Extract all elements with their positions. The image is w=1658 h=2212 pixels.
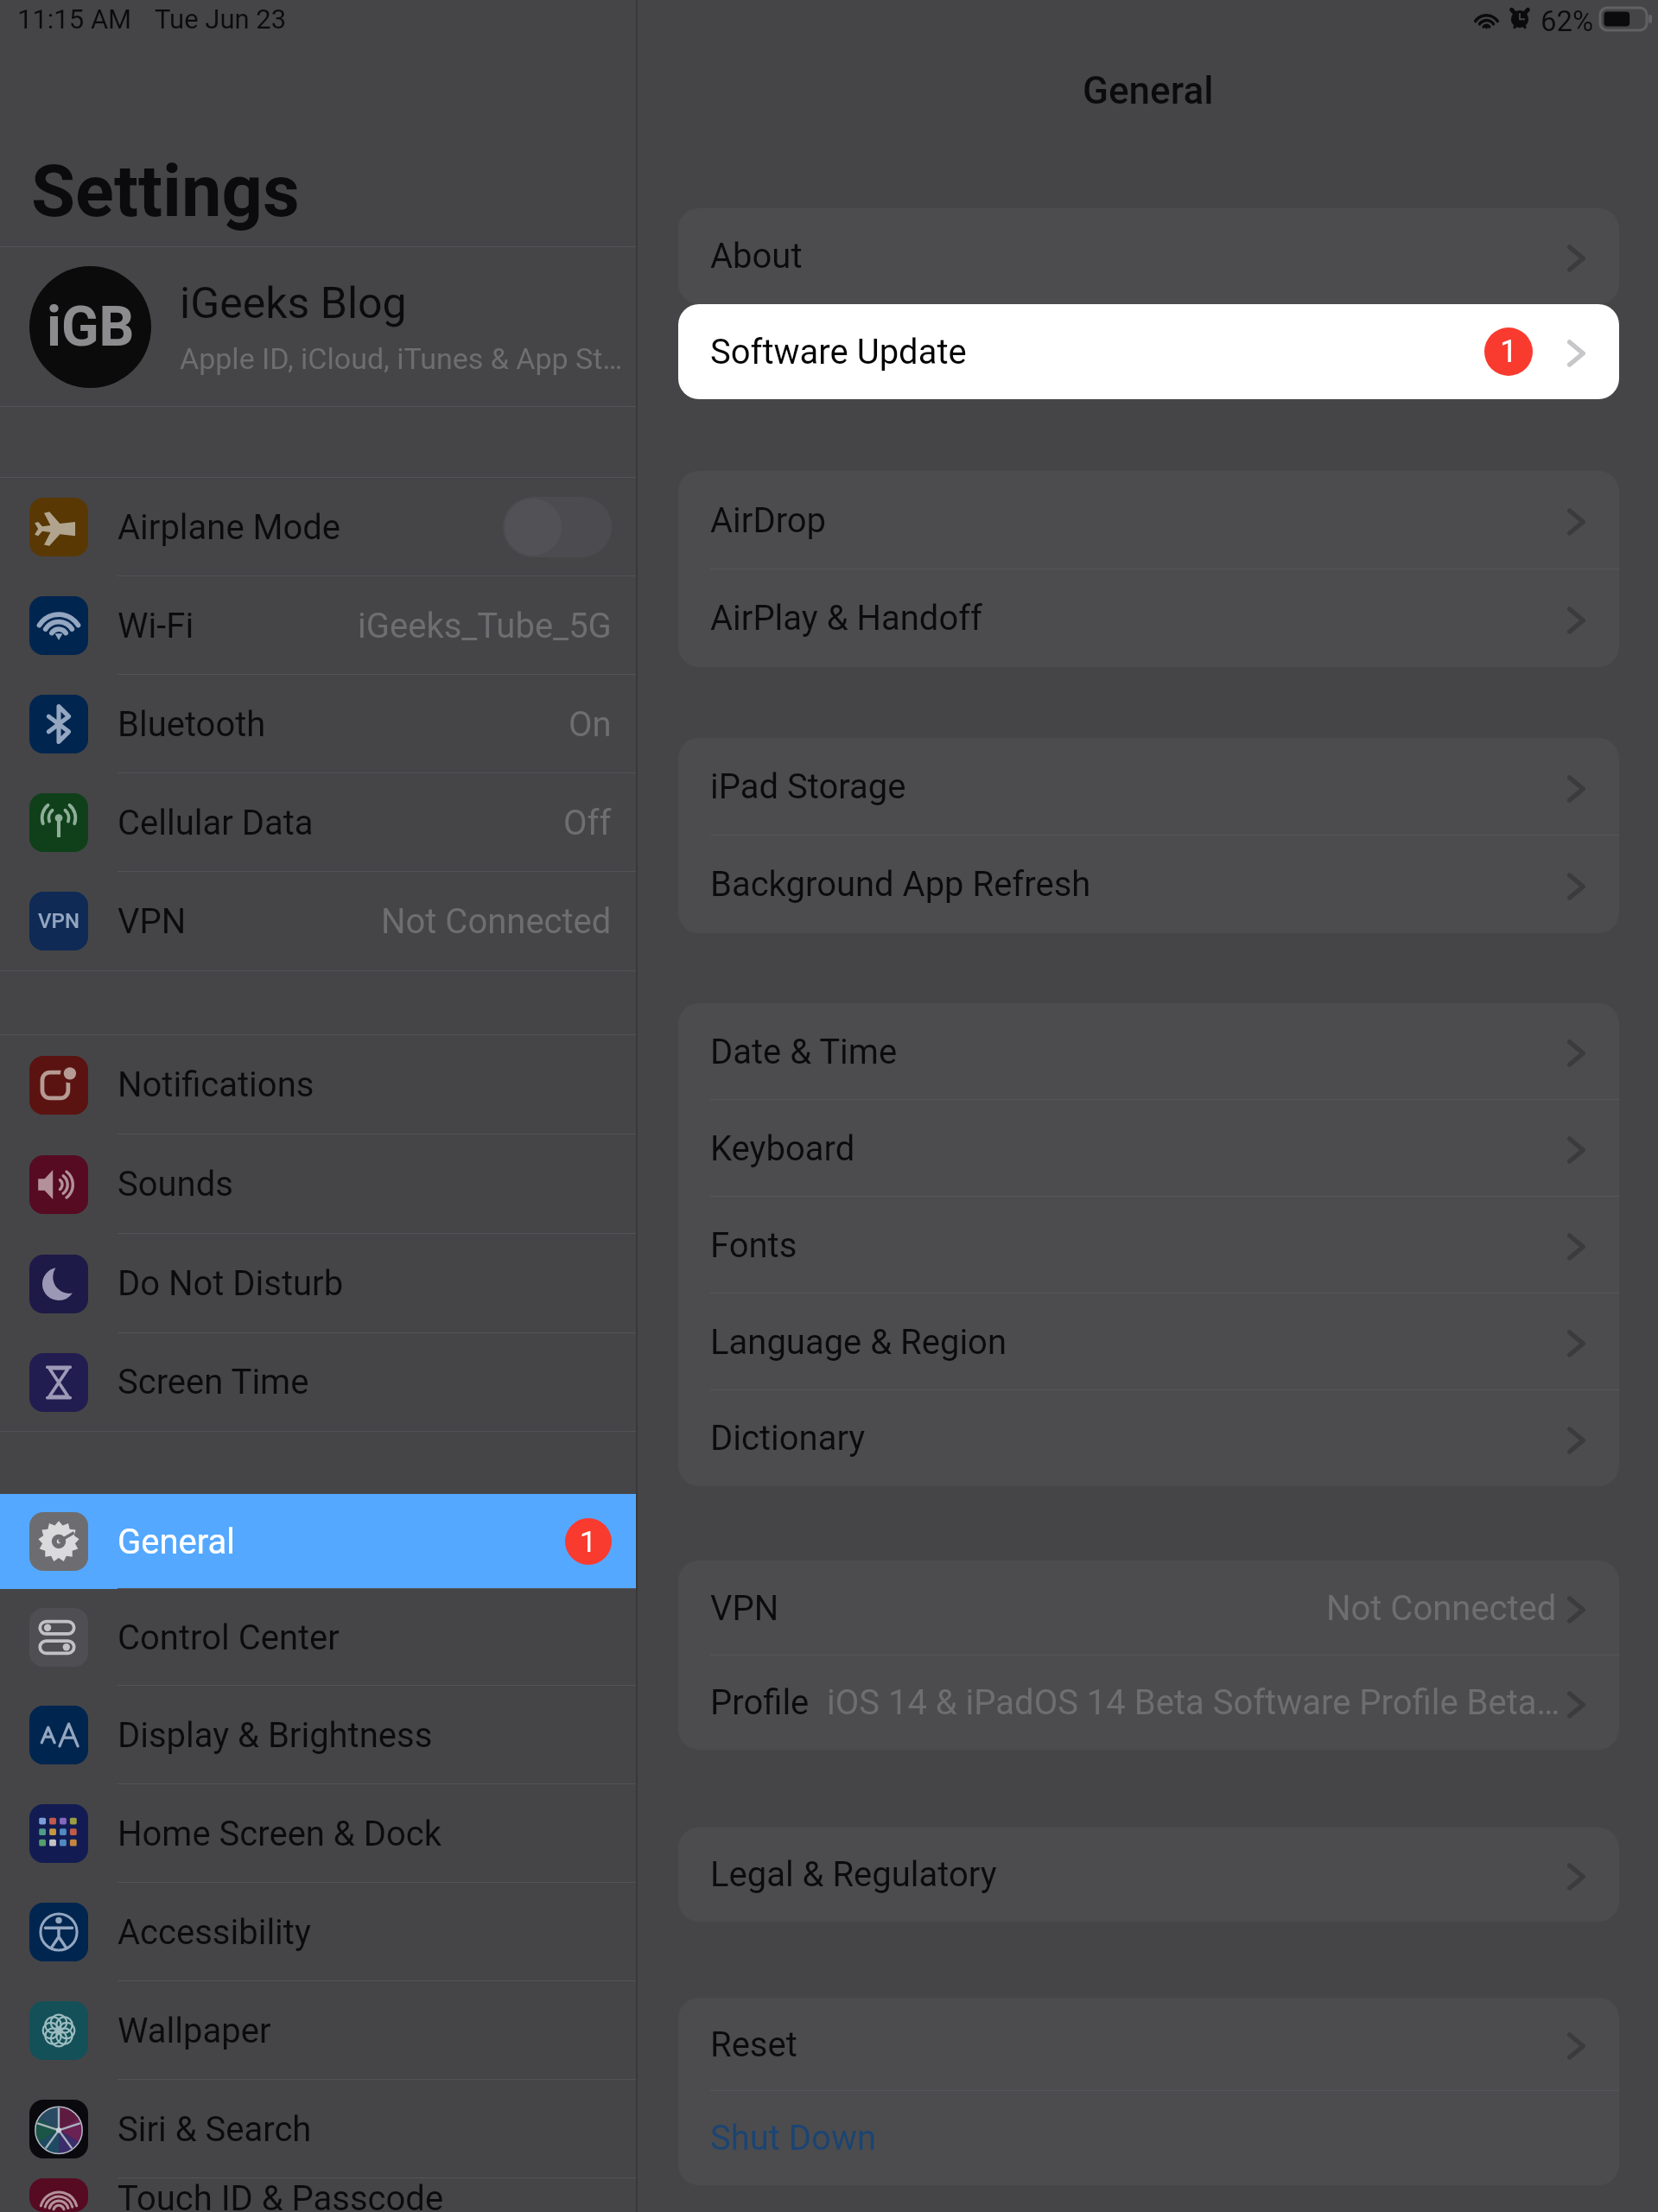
button[interactable]: Do Not Disturb — [0, 1234, 636, 1333]
button[interactable]: iGB — [0, 247, 636, 406]
button[interactable]: Screen Time — [0, 1333, 636, 1431]
button[interactable]: Display & Brightness — [0, 1686, 636, 1784]
button[interactable]: Software Update — [678, 304, 1619, 399]
staticText: Language & Region — [710, 1322, 1007, 1363]
button[interactable]: Profile — [678, 1656, 1619, 1750]
staticText: iOS 14 & iPadOS 14 Beta Software Profile… — [827, 1682, 1560, 1723]
staticText: VPN — [118, 901, 187, 942]
staticText: About — [710, 236, 803, 276]
button[interactable]: Background App Refresh — [678, 836, 1619, 933]
button[interactable]: Language & Region — [678, 1294, 1619, 1390]
button[interactable]: Accessibility — [0, 1883, 636, 1981]
staticText: Date & Time — [710, 1032, 898, 1072]
button[interactable]: Shut Down — [678, 2091, 1619, 2185]
staticText: Accessibility — [118, 1912, 311, 1953]
button[interactable]: Reset — [678, 1998, 1619, 2091]
staticText: Tue Jun 23 — [155, 3, 287, 35]
staticText: VPN — [710, 1588, 779, 1629]
staticText: 62% — [1540, 4, 1594, 36]
staticText: General — [118, 1522, 236, 1562]
staticText: Shut Down — [710, 2118, 877, 2158]
staticText: On — [569, 704, 612, 745]
staticText: Keyboard — [710, 1128, 855, 1169]
staticText: Wallpaper — [118, 2011, 271, 2051]
other: Battery 62 percent — [1600, 8, 1652, 30]
other: Wi-Fi status — [1472, 8, 1501, 29]
staticText: Software Update — [710, 332, 967, 372]
staticText: 1 — [580, 1524, 597, 1559]
button[interactable]: Siri & Search — [0, 2080, 636, 2178]
button[interactable]: Cellular Data — [0, 773, 636, 872]
button[interactable]: Bluetooth — [0, 675, 636, 773]
staticText: Profile — [710, 1682, 810, 1723]
staticText: Display & Brightness — [118, 1715, 433, 1756]
button[interactable]: Wallpaper — [0, 1981, 636, 2080]
button[interactable]: VPN — [678, 1560, 1619, 1656]
staticText: 1 — [1500, 334, 1518, 370]
button[interactable]: Sounds — [0, 1135, 636, 1234]
staticText: Siri & Search — [118, 2109, 312, 2150]
staticText: Home Screen & Dock — [118, 1814, 441, 1854]
staticText: iPad Storage — [710, 766, 906, 807]
staticText: Apple ID, iCloud, iTunes & App St… — [180, 341, 623, 376]
staticText: Wi-Fi — [118, 606, 194, 646]
staticText: Do Not Disturb — [118, 1263, 344, 1304]
staticText: Off — [563, 803, 612, 843]
staticText: 11:15 AM — [17, 3, 132, 35]
other: Alarm set — [1510, 8, 1529, 29]
button[interactable]: General — [0, 1494, 636, 1589]
button[interactable]: Fonts — [678, 1197, 1619, 1294]
button[interactable]: Notifications — [0, 1035, 636, 1135]
staticText: Not Connected — [381, 901, 612, 942]
staticText: Bluetooth — [118, 704, 266, 745]
staticText: Legal & Regulatory — [710, 1854, 997, 1895]
button[interactable]: Legal & Regulatory — [678, 1827, 1619, 1922]
button[interactable]: Dictionary — [678, 1390, 1619, 1486]
button[interactable]: Keyboard — [678, 1100, 1619, 1197]
button[interactable]: Home Screen & Dock — [0, 1784, 636, 1883]
staticText: Fonts — [710, 1225, 797, 1266]
staticText: Not Connected — [1326, 1588, 1557, 1629]
staticText: Airplane Mode — [118, 507, 341, 548]
button[interactable]: VPN — [0, 872, 636, 970]
staticText: Sounds — [118, 1164, 233, 1205]
button[interactable]: AirDrop — [678, 471, 1619, 569]
button[interactable]: iPad Storage — [678, 738, 1619, 836]
button[interactable]: Airplane Mode toggle — [503, 497, 612, 557]
staticText: Dictionary — [710, 1418, 866, 1459]
staticText: AirDrop — [710, 500, 827, 541]
staticText: iGB — [47, 295, 135, 359]
staticText: Reset — [710, 2024, 797, 2065]
staticText: iGeeks_Tube_5G — [358, 606, 612, 646]
button[interactable]: Airplane Mode — [0, 478, 636, 576]
staticText: iGeeks Blog — [180, 278, 407, 329]
staticText: Touch ID & Passcode — [118, 2178, 444, 2212]
staticText: VPN — [38, 909, 79, 933]
staticText: AirPlay & Handoff — [710, 598, 983, 639]
button[interactable]: Control Center — [0, 1589, 636, 1686]
staticText: Cellular Data — [118, 803, 314, 843]
staticText: Screen Time — [118, 1362, 309, 1402]
button[interactable]: Wi-Fi — [0, 576, 636, 675]
button[interactable]: About — [678, 208, 1619, 304]
staticText: General — [1083, 68, 1214, 113]
staticText: Settings — [31, 149, 300, 233]
button[interactable]: Date & Time — [678, 1003, 1619, 1100]
staticText: Notifications — [118, 1065, 314, 1105]
button[interactable]: Touch ID & Passcode — [0, 2178, 636, 2212]
staticText: Background App Refresh — [710, 864, 1091, 905]
button[interactable]: AirPlay & Handoff — [678, 569, 1619, 667]
staticText: Control Center — [118, 1618, 340, 1658]
